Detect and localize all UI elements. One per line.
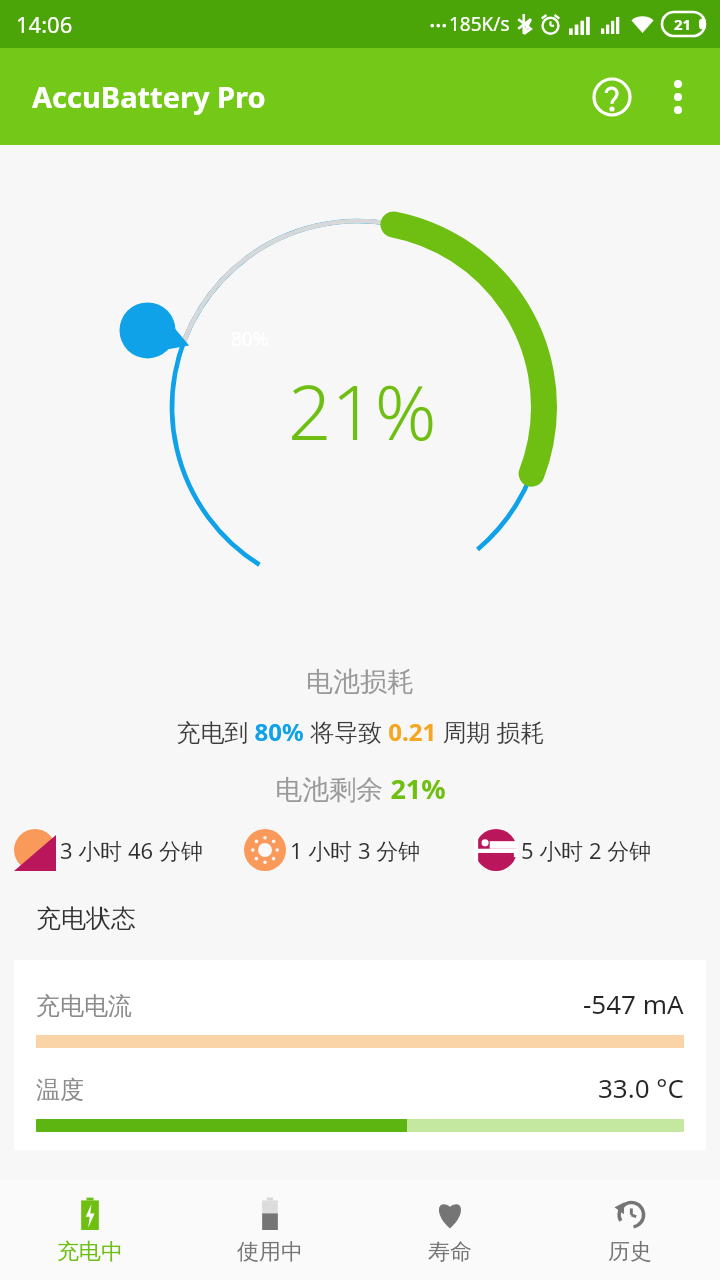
staticText: 历史 — [608, 1238, 652, 1266]
staticText: 充电中 — [57, 1238, 123, 1266]
staticText: 14:06 — [16, 9, 73, 39]
staticText: 33.0 °C — [598, 1070, 684, 1105]
button[interactable]: 1 小时 3 分钟 — [244, 829, 475, 871]
staticText: 充电状态 — [36, 903, 136, 934]
button[interactable]: 充电中 — [0, 1180, 180, 1280]
staticText: 21 — [674, 14, 692, 34]
staticText: 5 小时 2 分钟 — [521, 835, 652, 865]
staticText: 电池剩余 21% — [275, 770, 446, 807]
button[interactable]: 3 小时 46 分钟 — [14, 829, 244, 871]
button[interactable]: 充电电流 — [14, 960, 706, 1150]
button[interactable]: 历史 — [540, 1180, 720, 1280]
button[interactable]: Help — [584, 69, 640, 125]
staticText: -547 mA — [583, 986, 684, 1021]
staticText: 1 小时 3 分钟 — [290, 835, 421, 865]
button[interactable]: More options — [650, 69, 706, 125]
staticText: 21% — [288, 359, 437, 463]
staticText: 3 小时 46 分钟 — [60, 835, 203, 865]
staticText: 温度 — [36, 1075, 84, 1105]
staticText: 充电电流 — [36, 991, 132, 1021]
button[interactable]: 5 小时 2 分钟 — [475, 829, 706, 871]
staticText: 185K/s — [449, 11, 510, 37]
button[interactable]: 寿命 — [360, 1180, 540, 1280]
staticText: 80% — [231, 326, 269, 352]
staticText: 寿命 — [428, 1238, 472, 1266]
staticText: 使用中 — [237, 1238, 303, 1266]
staticText: 充电到 80% 将导致 0.21 周期 损耗 — [176, 715, 545, 748]
staticText: AccuBattery Pro — [32, 77, 266, 116]
staticText: 电池损耗 — [306, 665, 414, 699]
button[interactable]: 使用中 — [180, 1180, 360, 1280]
